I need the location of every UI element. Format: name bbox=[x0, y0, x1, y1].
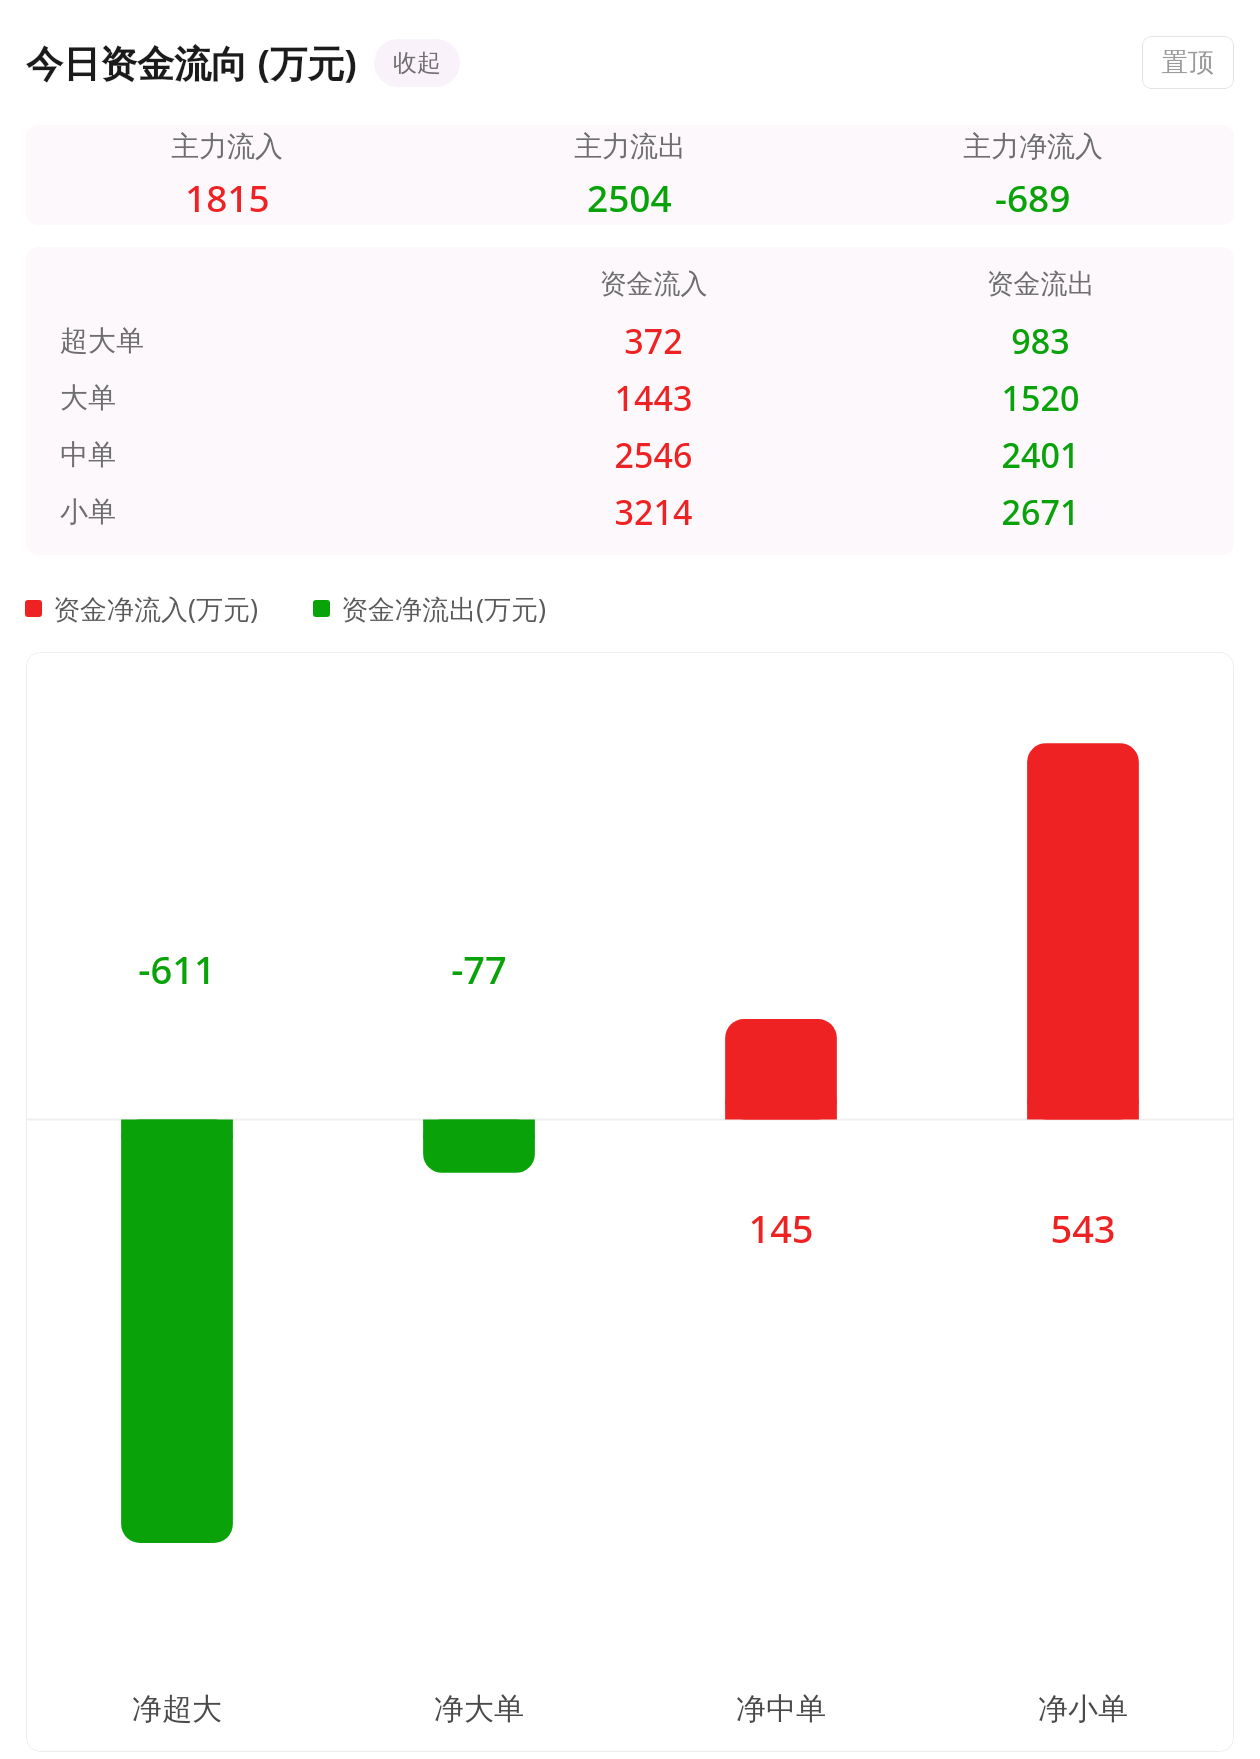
staticText: 净中单 bbox=[736, 1690, 826, 1728]
button[interactable]: 主力流入 bbox=[26, 125, 1234, 225]
staticText: 983 bbox=[847, 318, 1234, 364]
button[interactable]: 主力净流入 bbox=[831, 129, 1234, 222]
staticText: 2671 bbox=[847, 489, 1234, 535]
staticText: 资金净流入(万元) bbox=[53, 590, 259, 627]
staticText: 主力流出 bbox=[574, 129, 686, 164]
staticText: 3214 bbox=[460, 489, 847, 535]
staticText: 1815 bbox=[185, 172, 270, 222]
staticText: 1520 bbox=[847, 375, 1234, 421]
staticText: 净小单 bbox=[1038, 1690, 1128, 1728]
staticText: -689 bbox=[995, 172, 1071, 222]
button[interactable]: 超大单 bbox=[26, 312, 1234, 369]
button[interactable]: 净大单 bbox=[328, 1690, 630, 1728]
staticText: 2546 bbox=[460, 432, 847, 478]
staticText: -77 bbox=[328, 943, 630, 995]
button[interactable]: 大单 bbox=[26, 369, 1234, 426]
button[interactable]: 置顶 bbox=[1142, 36, 1234, 89]
button[interactable]: 小单 bbox=[26, 483, 1234, 540]
button[interactable]: 主力流入 bbox=[26, 129, 428, 222]
staticText: 置顶 bbox=[1162, 46, 1214, 79]
button[interactable]: 收起 bbox=[374, 39, 460, 87]
staticText: 主力净流入 bbox=[963, 129, 1103, 164]
staticText: 资金流入 bbox=[460, 267, 847, 301]
staticText: 1443 bbox=[460, 375, 847, 421]
staticText: -611 bbox=[26, 943, 328, 995]
staticText: 今日资金流向 (万元) bbox=[26, 37, 357, 88]
staticText: 资金流出 bbox=[847, 267, 1234, 301]
button[interactable]: -611 bbox=[26, 652, 1234, 1752]
staticText: 资金净流出(万元) bbox=[341, 590, 547, 627]
staticText: 543 bbox=[932, 1202, 1234, 1254]
staticText: 收起 bbox=[393, 48, 441, 78]
staticText: 超大单 bbox=[60, 323, 144, 358]
staticText: 2401 bbox=[847, 432, 1234, 478]
staticText: 净超大 bbox=[132, 1690, 222, 1728]
staticText: 大单 bbox=[60, 380, 116, 415]
staticText: 2504 bbox=[587, 172, 672, 222]
button[interactable]: 主力流出 bbox=[428, 129, 831, 222]
staticText: 小单 bbox=[60, 494, 116, 529]
button[interactable]: 净小单 bbox=[932, 1690, 1234, 1728]
staticText: 中单 bbox=[60, 437, 116, 472]
staticText: 主力流入 bbox=[171, 129, 283, 164]
staticText: 372 bbox=[460, 318, 847, 364]
button[interactable]: 净超大 bbox=[26, 1690, 328, 1728]
staticText: 净大单 bbox=[434, 1690, 524, 1728]
staticText: 145 bbox=[630, 1202, 932, 1254]
button[interactable]: 净中单 bbox=[630, 1690, 932, 1728]
button[interactable]: 中单 bbox=[26, 426, 1234, 483]
button[interactable]: 资金流入 bbox=[26, 255, 1234, 312]
